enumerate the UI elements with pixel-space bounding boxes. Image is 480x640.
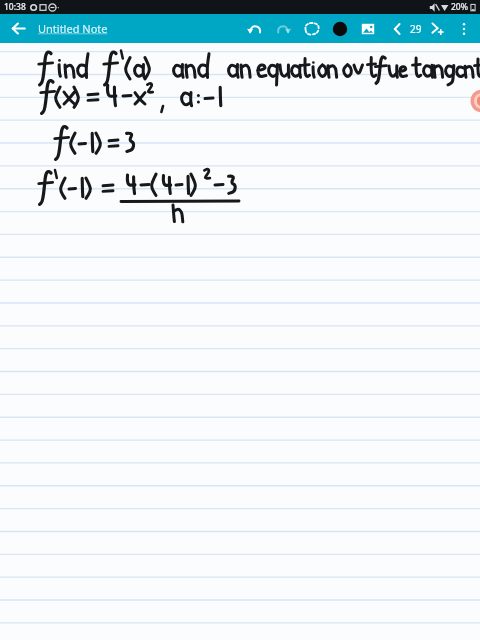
button[interactable]: 29 [410, 14, 422, 43]
button[interactable]: Lasso select [298, 14, 326, 43]
button[interactable]: Back [0, 14, 36, 43]
button[interactable]: Undo [242, 14, 270, 43]
staticText: 29 [410, 22, 422, 36]
button[interactable]: Untitled Note [36, 21, 110, 36]
button[interactable]: Next page [422, 14, 450, 43]
button[interactable]: Previous page [382, 14, 410, 43]
staticText: Untitled Note [38, 21, 108, 36]
button[interactable]: Pen colour [326, 14, 354, 43]
staticText: ·· [55, 2, 60, 13]
button[interactable]: More options [450, 14, 478, 43]
staticText: 10:38 [4, 1, 26, 13]
staticText: 20% [451, 1, 468, 13]
button[interactable]: Redo [270, 14, 298, 43]
button[interactable]: Insert image [354, 14, 382, 43]
